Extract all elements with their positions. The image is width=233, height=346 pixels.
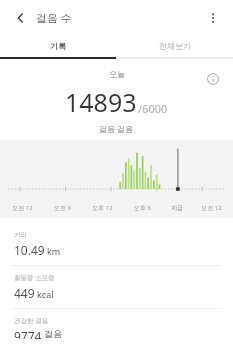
button[interactable]: Information bbox=[203, 69, 223, 89]
button[interactable]: More options bbox=[201, 6, 225, 30]
button[interactable]: 기록 bbox=[0, 35, 116, 57]
staticText: 9774 bbox=[14, 328, 42, 339]
staticText: 전체보기 bbox=[159, 41, 191, 51]
staticText: 오후 6 bbox=[134, 204, 151, 212]
staticText: 오전 6 bbox=[54, 204, 71, 212]
staticText: 걸음 걸음 bbox=[99, 123, 134, 134]
button[interactable]: 활동량 소모량 bbox=[0, 266, 233, 308]
button[interactable]: 거리 bbox=[0, 224, 233, 265]
staticText: 오후 12 bbox=[92, 204, 113, 212]
button[interactable]: 건강한 걸음 bbox=[0, 309, 233, 346]
staticText: /6000 bbox=[138, 101, 168, 116]
staticText: kcal bbox=[37, 288, 54, 300]
button[interactable]: Back bbox=[8, 5, 34, 31]
staticText: 걸음 bbox=[44, 328, 62, 338]
staticText: 오전 12 bbox=[201, 204, 222, 212]
staticText: 건강한 걸음 bbox=[14, 316, 49, 325]
staticText: 거리 bbox=[14, 231, 27, 239]
staticText: 10.49 bbox=[14, 242, 45, 258]
staticText: 449 bbox=[14, 285, 35, 301]
staticText: 오전 12 bbox=[12, 204, 33, 212]
staticText: 기록 bbox=[50, 41, 66, 51]
staticText: 지금 bbox=[171, 204, 183, 212]
staticText: km bbox=[47, 245, 61, 257]
staticText: 걸음 수 bbox=[36, 10, 72, 25]
staticText: 활동량 소모량 bbox=[14, 273, 55, 282]
staticText: 14893 bbox=[65, 85, 137, 119]
staticText: 오늘 bbox=[109, 69, 125, 79]
button[interactable]: 전체보기 bbox=[116, 35, 233, 57]
